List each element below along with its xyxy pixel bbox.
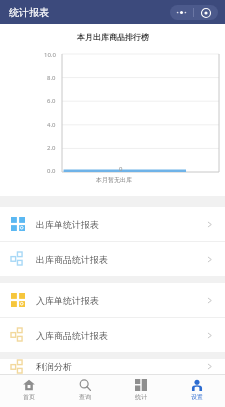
button[interactable]: 入库单统计报表 [0,283,225,317]
button[interactable]: 统计 [113,375,169,407]
staticText: 4.0 [47,121,56,129]
button[interactable]: 利润分析 [0,359,225,374]
button[interactable]: 出库单统计报表 [0,207,225,241]
staticText: 出库商品统计报表 [36,254,205,265]
button[interactable]: 查询 [57,375,113,407]
button[interactable]: 设置 [169,375,225,407]
button[interactable]: Close mini program [194,5,218,20]
button[interactable]: 入库商品统计报表 [0,318,225,352]
staticText: 本月出库商品排行榜 [77,32,149,42]
staticText: 本月暂无出库 [96,176,132,184]
staticText: 6.0 [47,97,56,105]
staticText: 查询 [79,393,91,401]
button[interactable]: More options [170,5,193,20]
staticText: 10.0 [44,51,56,59]
button[interactable]: 出库商品统计报表 [0,242,225,276]
staticText: 利润分析 [36,361,205,372]
staticText: 首页 [23,393,35,401]
staticText: 入库单统计报表 [36,295,205,306]
staticText: 2.0 [47,144,56,152]
staticText: 出库单统计报表 [36,219,205,230]
button[interactable]: 首页 [0,375,57,407]
staticText: 入库商品统计报表 [36,330,205,341]
staticText: 0 [119,165,123,173]
staticText: 统计报表 [9,6,49,19]
staticText: 设置 [191,393,203,401]
staticText: 统计 [135,393,147,401]
staticText: 8.0 [47,74,56,82]
staticText: 0.0 [47,167,56,175]
